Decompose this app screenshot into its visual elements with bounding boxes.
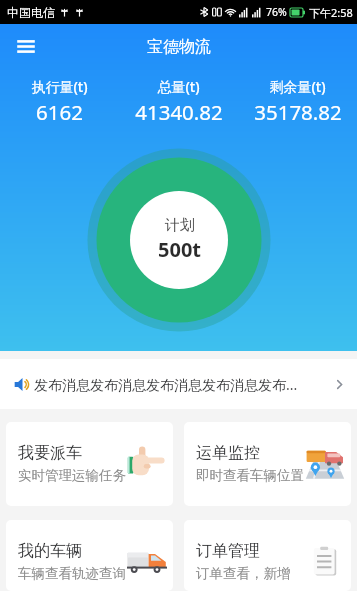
staticText: 宝德物流 [147, 37, 211, 57]
staticText: 中国电信 [7, 5, 55, 20]
staticText: 发布消息发布消息发布消息发布消息发布... [34, 375, 327, 394]
button[interactable]: 订单管理 [184, 520, 351, 591]
staticText: 剩余量(t) [269, 77, 326, 96]
button[interactable]: Menu [10, 31, 41, 62]
staticText: 我的车辆 [18, 541, 82, 561]
staticText: 车辆查看轨迹查询 [18, 565, 126, 582]
staticText: 执行量(t) [31, 77, 88, 96]
button[interactable]: 我的车辆 [6, 520, 173, 591]
staticText: 订单查看，新增 [196, 565, 291, 582]
staticText: 我要派车 [18, 443, 82, 463]
staticText: 35178.82 [254, 98, 342, 126]
staticText: 计划 [165, 216, 195, 235]
staticText: 500t [158, 236, 201, 263]
button[interactable]: 发布消息发布消息发布消息发布消息发布... [0, 359, 357, 409]
staticText: 订单管理 [196, 541, 260, 561]
staticText: 76% [266, 5, 287, 19]
staticText: 6162 [36, 98, 83, 126]
staticText: 总量(t) [157, 77, 200, 96]
staticText: 实时管理运输任务 [18, 467, 126, 484]
staticText: 41340.82 [135, 98, 223, 126]
staticText: 下午2:58 [309, 5, 353, 20]
staticText: 即时查看车辆位置 [196, 467, 304, 484]
button[interactable]: 运单监控 [184, 422, 351, 506]
staticText: 运单监控 [196, 443, 260, 463]
button[interactable]: 我要派车 [6, 422, 173, 506]
